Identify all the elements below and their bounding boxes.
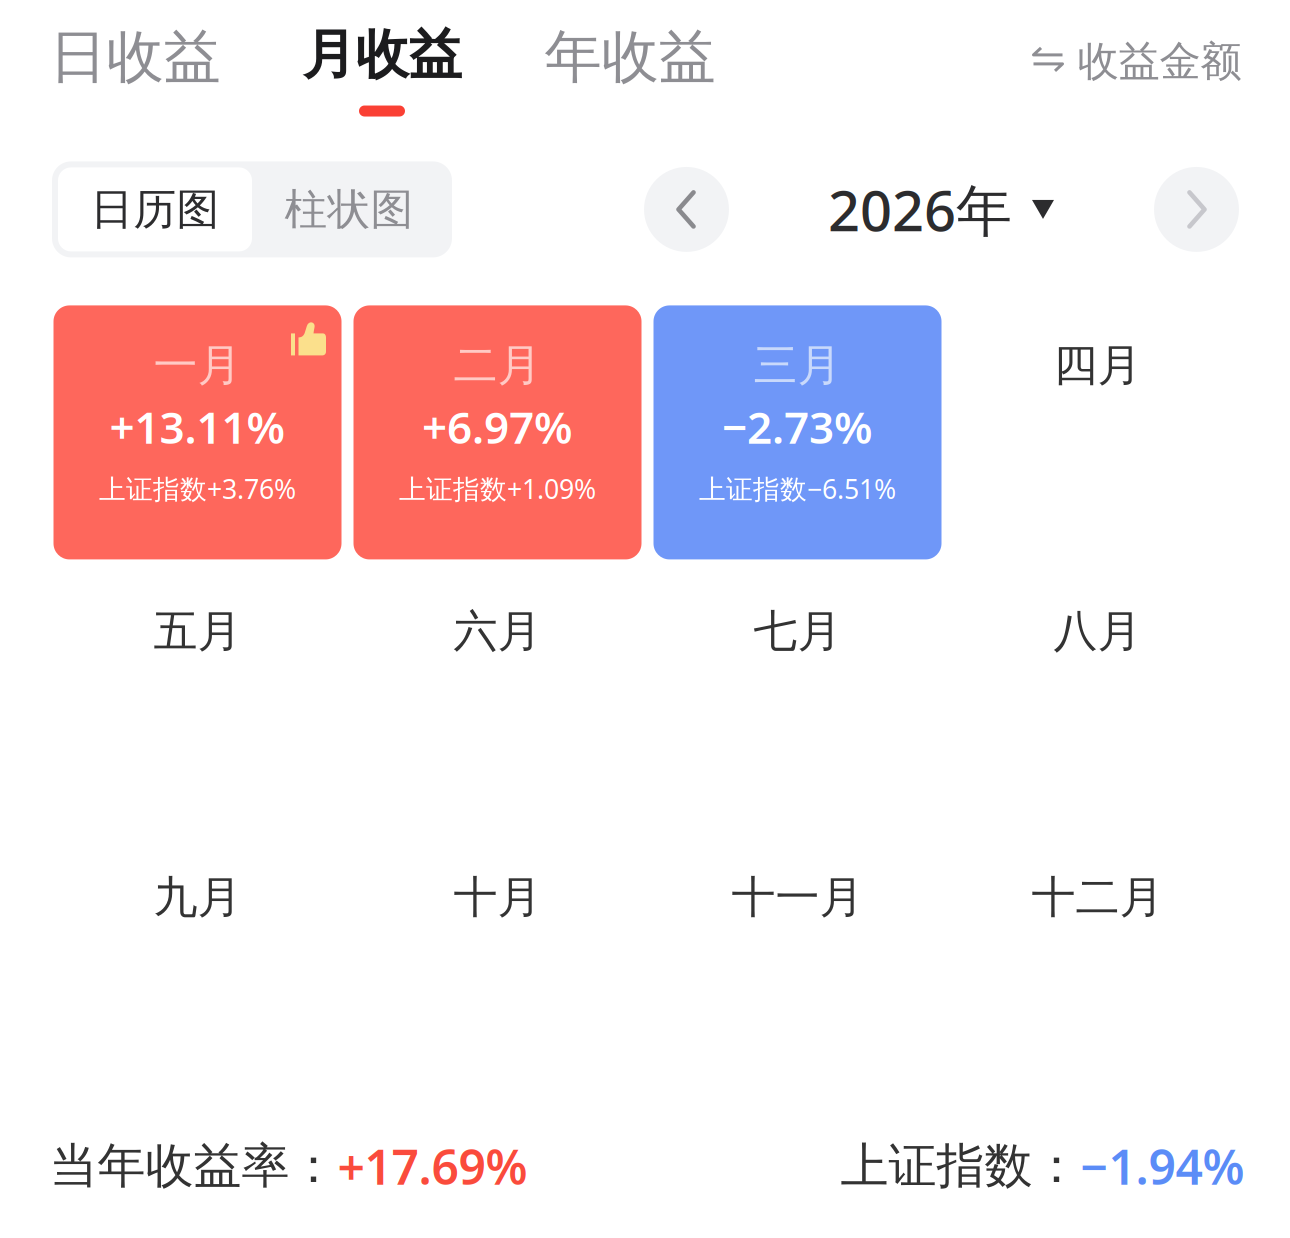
staticText: +13.11% xyxy=(109,397,285,456)
staticText: −1.94% xyxy=(1080,1134,1244,1198)
button[interactable]: 日收益 xyxy=(49,22,220,121)
staticText: 上证指数−6.51% xyxy=(699,471,896,506)
button[interactable]: 十月 xyxy=(353,837,641,1091)
staticText: 九月 xyxy=(153,870,241,924)
button[interactable]: 五月 xyxy=(53,571,341,825)
staticText: 三月 xyxy=(753,338,841,392)
staticText: 上证指数+1.09% xyxy=(399,471,596,506)
button[interactable]: 日历图 xyxy=(58,167,252,251)
staticText: 七月 xyxy=(753,604,841,658)
button[interactable]: 年收益 xyxy=(544,22,715,121)
staticText: +6.97% xyxy=(422,397,573,456)
staticText: 柱状图 xyxy=(284,183,413,236)
staticText: +17.69% xyxy=(337,1134,527,1198)
button[interactable]: 四月 xyxy=(953,305,1241,559)
button[interactable]: 十二月 xyxy=(953,837,1241,1091)
button[interactable]: 二月 xyxy=(353,305,641,559)
button[interactable]: Previous year xyxy=(644,167,729,252)
staticText: 十一月 xyxy=(731,870,863,924)
button[interactable]: 2026年 xyxy=(828,172,1054,247)
button[interactable]: 收益金额 xyxy=(1032,22,1241,87)
staticText: 月收益 xyxy=(302,22,461,87)
button[interactable]: 九月 xyxy=(53,837,341,1091)
button[interactable]: 七月 xyxy=(653,571,941,825)
staticText: 一月 xyxy=(153,338,241,392)
staticText: 收益金额 xyxy=(1077,36,1241,87)
button[interactable]: 六月 xyxy=(353,571,641,825)
button[interactable]: Next year xyxy=(1154,167,1239,252)
button[interactable]: 月收益 xyxy=(302,22,461,116)
staticText: 五月 xyxy=(153,604,241,658)
staticText: 日收益 xyxy=(49,22,220,92)
button[interactable]: 柱状图 xyxy=(252,167,446,251)
staticText: 十二月 xyxy=(1031,870,1163,924)
staticText: 六月 xyxy=(453,604,541,658)
staticText: 日历图 xyxy=(90,183,219,236)
staticText: 上证指数+3.76% xyxy=(99,471,296,506)
staticText: 八月 xyxy=(1053,604,1141,658)
button[interactable]: 三月 xyxy=(653,305,941,559)
staticText: 上证指数： xyxy=(840,1137,1080,1196)
staticText: 十月 xyxy=(453,870,541,924)
staticText: 年收益 xyxy=(544,22,715,92)
staticText: 当年收益率： xyxy=(49,1137,337,1196)
button[interactable]: 八月 xyxy=(953,571,1241,825)
staticText: 2026年 xyxy=(828,172,1012,247)
staticText: 二月 xyxy=(453,338,541,392)
button[interactable]: 一月 xyxy=(53,305,341,559)
staticText: 四月 xyxy=(1053,338,1141,392)
staticText: −2.73% xyxy=(722,397,873,456)
button[interactable]: 十一月 xyxy=(653,837,941,1091)
